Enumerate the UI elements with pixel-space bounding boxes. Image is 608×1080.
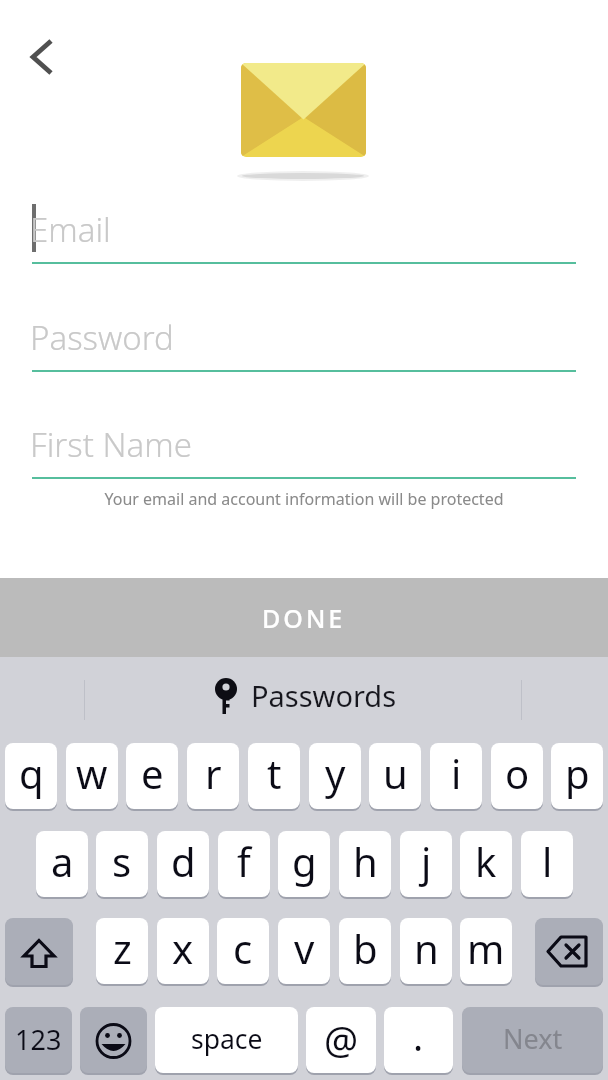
button[interactable]: o bbox=[491, 743, 543, 809]
button[interactable]: j bbox=[400, 831, 452, 897]
staticText: q bbox=[19, 746, 44, 800]
staticText: . bbox=[413, 1010, 424, 1062]
staticText: Password bbox=[30, 315, 174, 360]
button[interactable]: Next bbox=[462, 1007, 603, 1073]
button[interactable]: t bbox=[248, 743, 300, 809]
staticText: x bbox=[172, 921, 194, 975]
staticText: n bbox=[414, 921, 439, 975]
staticText: i bbox=[451, 746, 462, 800]
staticText: j bbox=[421, 834, 432, 888]
staticText: 123 bbox=[15, 1021, 62, 1058]
button[interactable]: f bbox=[218, 831, 270, 897]
staticText: y bbox=[325, 746, 346, 800]
button[interactable]: b bbox=[339, 918, 391, 984]
button[interactable]: First Name bbox=[32, 417, 576, 479]
button[interactable]: v bbox=[278, 918, 330, 984]
staticText: e bbox=[141, 746, 164, 800]
staticText: z bbox=[113, 921, 132, 975]
staticText: g bbox=[292, 834, 317, 888]
button[interactable]: Shift bbox=[5, 918, 73, 985]
staticText: h bbox=[353, 834, 378, 888]
button[interactable]: Backspace bbox=[535, 918, 603, 985]
staticText: v bbox=[294, 921, 315, 975]
staticText: Your email and account information will … bbox=[0, 488, 608, 510]
staticText: space bbox=[191, 1021, 263, 1057]
staticText: f bbox=[237, 834, 251, 888]
button[interactable]: d bbox=[157, 831, 209, 897]
button[interactable]: k bbox=[460, 831, 512, 897]
staticText: c bbox=[233, 921, 253, 975]
staticText: DONE bbox=[262, 601, 346, 635]
staticText: u bbox=[383, 746, 408, 800]
staticText: a bbox=[51, 834, 74, 888]
staticText: Email bbox=[30, 207, 111, 252]
button[interactable]: p bbox=[551, 743, 603, 809]
staticText: First Name bbox=[30, 422, 192, 467]
staticText: w bbox=[76, 746, 108, 800]
button[interactable]: w bbox=[66, 743, 118, 809]
button[interactable]: r bbox=[187, 743, 239, 809]
button[interactable]: Email bbox=[32, 202, 576, 264]
button[interactable]: DONE bbox=[0, 578, 608, 657]
button[interactable]: l bbox=[521, 831, 573, 897]
staticText: b bbox=[353, 921, 378, 975]
button[interactable]: s bbox=[96, 831, 148, 897]
button[interactable]: 123 bbox=[5, 1007, 72, 1073]
staticText: @ bbox=[324, 1013, 359, 1065]
button[interactable]: n bbox=[400, 918, 452, 984]
button[interactable]: i bbox=[430, 743, 482, 809]
button[interactable]: Password bbox=[32, 310, 576, 372]
button[interactable]: Passwords bbox=[86, 657, 522, 735]
button[interactable]: y bbox=[309, 743, 361, 809]
button[interactable]: z bbox=[96, 918, 148, 984]
button[interactable]: Emoji bbox=[80, 1007, 147, 1073]
button[interactable]: h bbox=[339, 831, 391, 897]
button[interactable]: Back bbox=[10, 32, 74, 82]
button[interactable]: q bbox=[5, 743, 57, 809]
staticText: t bbox=[267, 746, 282, 800]
button[interactable]: . bbox=[384, 1007, 453, 1073]
button[interactable]: e bbox=[126, 743, 178, 809]
button[interactable]: space bbox=[155, 1007, 298, 1073]
staticText: l bbox=[542, 834, 553, 888]
staticText: m bbox=[467, 921, 505, 975]
button[interactable]: m bbox=[460, 918, 512, 984]
button[interactable]: @ bbox=[306, 1007, 376, 1073]
staticText: k bbox=[475, 834, 497, 888]
staticText: o bbox=[505, 746, 530, 800]
button[interactable]: x bbox=[157, 918, 209, 984]
button[interactable]: g bbox=[278, 831, 330, 897]
button[interactable]: u bbox=[369, 743, 421, 809]
staticText: Next bbox=[503, 1020, 563, 1057]
button[interactable]: c bbox=[217, 918, 269, 984]
button[interactable]: a bbox=[36, 831, 88, 897]
staticText: r bbox=[205, 746, 222, 800]
staticText: s bbox=[112, 834, 132, 888]
staticText: d bbox=[171, 834, 196, 888]
staticText: p bbox=[565, 746, 590, 800]
staticText: Passwords bbox=[251, 676, 397, 715]
